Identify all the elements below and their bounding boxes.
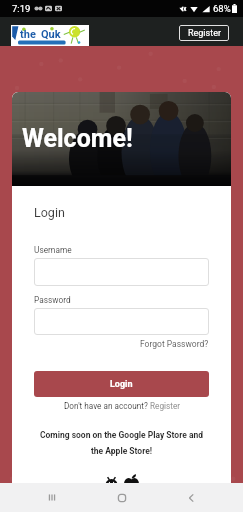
staticText: Don't have an account? [64, 401, 150, 411]
staticText: Login [110, 379, 133, 390]
staticText: Register [188, 28, 221, 39]
button[interactable]: Back [174, 483, 208, 512]
staticText: Login [34, 205, 65, 220]
staticText: the [20, 28, 36, 41]
staticText: Quk [41, 28, 61, 41]
staticText: Forgot Password? [140, 339, 209, 349]
staticText: Password [34, 295, 71, 305]
staticText: 7:19 [12, 3, 31, 14]
button[interactable]: Recent apps [35, 483, 69, 512]
button[interactable]: Register [179, 25, 229, 41]
button[interactable]: Forgot Password? [140, 339, 209, 349]
button[interactable]: Username field [34, 258, 209, 286]
button[interactable]: Login [34, 371, 209, 397]
staticText: Welcome! [22, 124, 133, 153]
staticText: Username [34, 245, 72, 255]
staticText: Coming soon on the Google Play Store and… [34, 430, 209, 456]
staticText: Register [150, 401, 180, 411]
button[interactable]: Don't have an account? [34, 401, 209, 411]
staticText: 68% [213, 3, 231, 14]
button[interactable]: Password field [34, 308, 209, 335]
button[interactable]: Home [105, 483, 139, 512]
button[interactable]: The Quk home [11, 25, 89, 46]
